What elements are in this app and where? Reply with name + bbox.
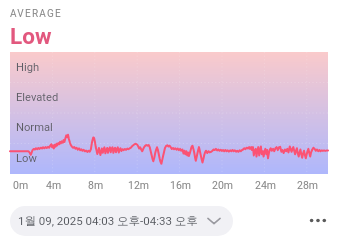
staticText: 24m [255,179,277,191]
staticText: Normal [16,121,53,134]
staticText: 28m [297,179,319,191]
staticText: High [16,61,40,74]
staticText: Low [10,23,52,49]
staticText: AVERAGE [10,8,63,20]
staticText: 12m [128,179,150,191]
staticText: 8m [88,179,104,191]
staticText: 16m [170,179,192,191]
staticText: 20m [212,179,234,191]
button[interactable]: 1월 09, 2025 04:03 오후-04:33 오후 [10,206,233,236]
staticText: 4m [46,179,62,191]
staticText: Elevated [16,91,59,104]
button[interactable]: More options [300,207,328,235]
staticText: 1월 09, 2025 04:03 오후-04:33 오후 [18,214,198,228]
staticText: 0m [13,179,29,191]
staticText: Low [16,152,37,165]
